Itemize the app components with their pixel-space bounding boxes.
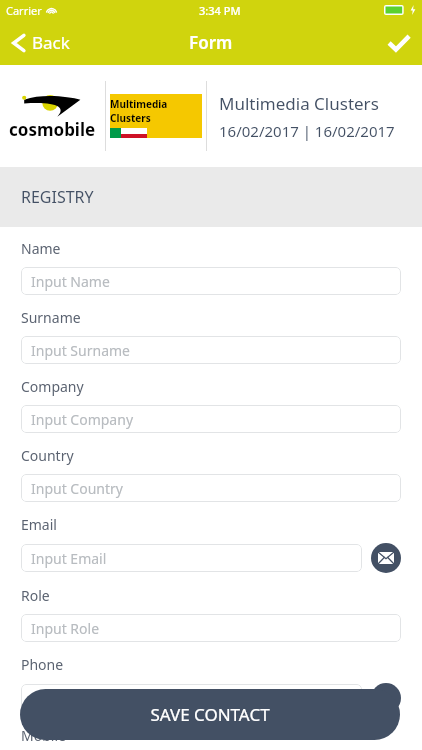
button[interactable]: Input Role [21,614,401,642]
staticText: Role [21,586,50,605]
staticText: Country [21,446,74,465]
staticText: Email [21,515,57,534]
staticText: cosmobile [9,118,96,141]
staticText: Back [32,31,70,54]
button[interactable]: Phone [371,683,401,713]
button[interactable]: Input Company [21,405,401,433]
staticText: Surname [21,308,81,327]
button[interactable]: Done [376,22,422,64]
staticText: 16/02/2017 | 16/02/2017 [219,121,395,141]
button[interactable]: Back [0,23,82,62]
staticText: Name [21,239,61,258]
staticText: 3:34 PM [199,3,241,18]
staticText: Carrier [6,3,42,18]
button[interactable]: Input Phone [21,684,362,712]
staticText: Input Phone [31,689,113,708]
staticText: REGISTRY [21,186,94,208]
staticText: Mobile [21,726,66,745]
button[interactable]: Input Email [21,544,362,572]
staticText: SAVE CONTACT [150,703,270,726]
button[interactable]: Email [371,543,401,573]
staticText: Input Name [31,272,110,291]
staticText: Company [21,377,84,396]
staticText: Input Surname [31,341,130,360]
staticText: Input Country [31,479,123,498]
staticText: Multimedia Clusters [219,92,379,115]
staticText: Phone [21,655,64,674]
staticText: Input Company [31,410,134,429]
button[interactable]: Input Name [21,267,401,295]
staticText: Input Role [31,619,100,638]
staticText: Form [189,31,233,54]
button[interactable]: SAVE CONTACT [20,689,400,740]
staticText: Input Email [31,549,107,568]
button[interactable]: Input Surname [21,336,401,364]
staticText: Multimedia Clusters [110,97,202,125]
button[interactable]: Input Country [21,474,401,502]
